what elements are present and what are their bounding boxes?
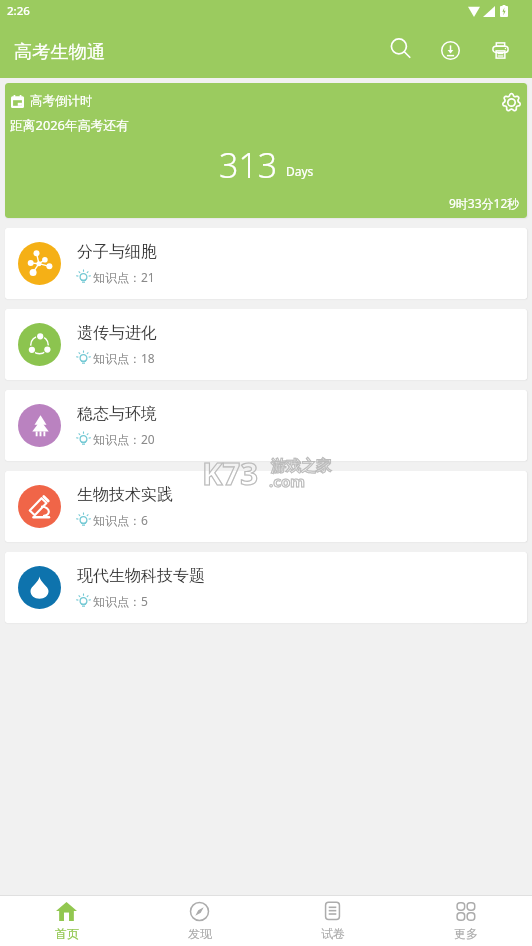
- staticText: 分子与细胞: [77, 242, 157, 262]
- staticText: 高考生物通: [14, 40, 105, 63]
- staticText: 生物技术实践: [77, 485, 173, 505]
- staticText: 发现: [188, 926, 212, 941]
- staticText: 游戏之家: [271, 457, 331, 476]
- staticText: 遗传与进化: [77, 323, 157, 343]
- staticText: 首页: [55, 926, 79, 941]
- staticText: 2:26: [7, 3, 30, 19]
- staticText: .com: [269, 471, 305, 491]
- button[interactable]: Download: [426, 26, 474, 74]
- staticText: 知识点：18: [93, 350, 155, 366]
- staticText: 高考倒计时: [30, 93, 93, 109]
- staticText: 更多: [454, 926, 478, 941]
- staticText: 试卷: [321, 926, 345, 941]
- button[interactable]: Search: [376, 25, 424, 73]
- button[interactable]: 稳态与环境: [5, 390, 527, 461]
- staticText: Days: [286, 163, 314, 179]
- button[interactable]: 试卷: [266, 896, 399, 946]
- staticText: 稳态与环境: [77, 404, 157, 424]
- button[interactable]: 现代生物科技专题: [5, 552, 527, 623]
- button[interactable]: 首页: [0, 896, 133, 946]
- staticText: 知识点：5: [93, 593, 148, 609]
- button[interactable]: 生物技术实践: [5, 471, 527, 542]
- staticText: 知识点：21: [93, 269, 155, 285]
- staticText: 距离2026年高考还有: [10, 116, 129, 133]
- button[interactable]: 发现: [133, 896, 266, 946]
- button[interactable]: Settings: [493, 84, 527, 120]
- staticText: 9时33分12秒: [449, 195, 520, 211]
- button[interactable]: 高考倒计时: [5, 83, 527, 218]
- staticText: K73: [202, 452, 259, 494]
- staticText: 知识点：6: [93, 512, 148, 528]
- button[interactable]: Print: [476, 26, 524, 74]
- button[interactable]: 更多: [399, 896, 532, 946]
- staticText: 313: [219, 142, 278, 188]
- button[interactable]: 分子与细胞: [5, 228, 527, 299]
- staticText: 现代生物科技专题: [77, 566, 205, 586]
- staticText: 知识点：20: [93, 431, 155, 447]
- button[interactable]: 遗传与进化: [5, 309, 527, 380]
